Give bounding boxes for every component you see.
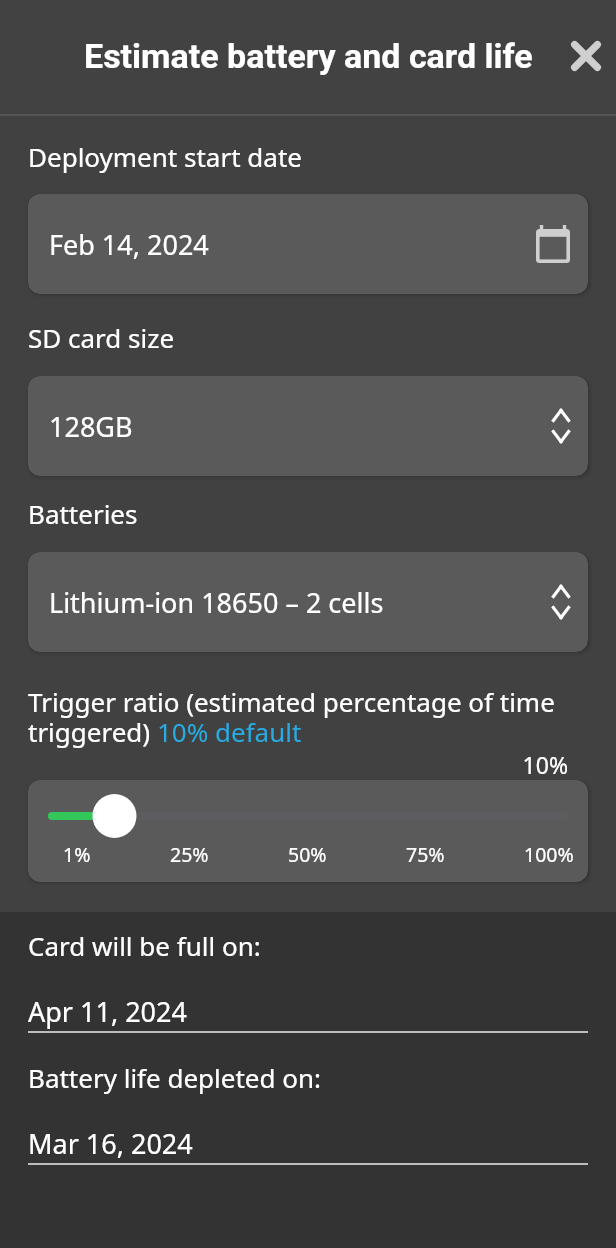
- staticText: 10%: [28, 749, 568, 780]
- button[interactable]: Feb 14, 2024: [28, 194, 588, 294]
- staticText: 128GB: [49, 408, 133, 445]
- staticText: Apr 11, 2024: [28, 993, 187, 1030]
- staticText: Batteries: [28, 496, 138, 531]
- staticText: Battery life depleted on:: [28, 1060, 322, 1095]
- staticText: Deployment start date: [28, 139, 302, 174]
- staticText: 75%: [406, 841, 445, 868]
- staticText: 1%: [63, 841, 91, 868]
- staticText: Card will be full on:: [28, 928, 261, 963]
- staticText: SD card size: [28, 320, 175, 355]
- staticText: 25%: [170, 841, 209, 868]
- staticText: Mar 16, 2024: [28, 1125, 193, 1162]
- button[interactable]: [52, 794, 564, 838]
- button[interactable]: 128GB: [28, 376, 588, 476]
- staticText: Lithium-ion 18650 – 2 cells: [49, 584, 384, 621]
- button[interactable]: Lithium-ion 18650 – 2 cells: [28, 552, 588, 652]
- staticText: Feb 14, 2024: [49, 226, 209, 263]
- staticText: 100%: [524, 841, 574, 868]
- button[interactable]: Close: [558, 28, 614, 84]
- staticText: Trigger ratio (estimated percentage of t…: [28, 684, 588, 749]
- staticText: Estimate battery and card life: [84, 36, 533, 76]
- staticText: 50%: [288, 841, 327, 868]
